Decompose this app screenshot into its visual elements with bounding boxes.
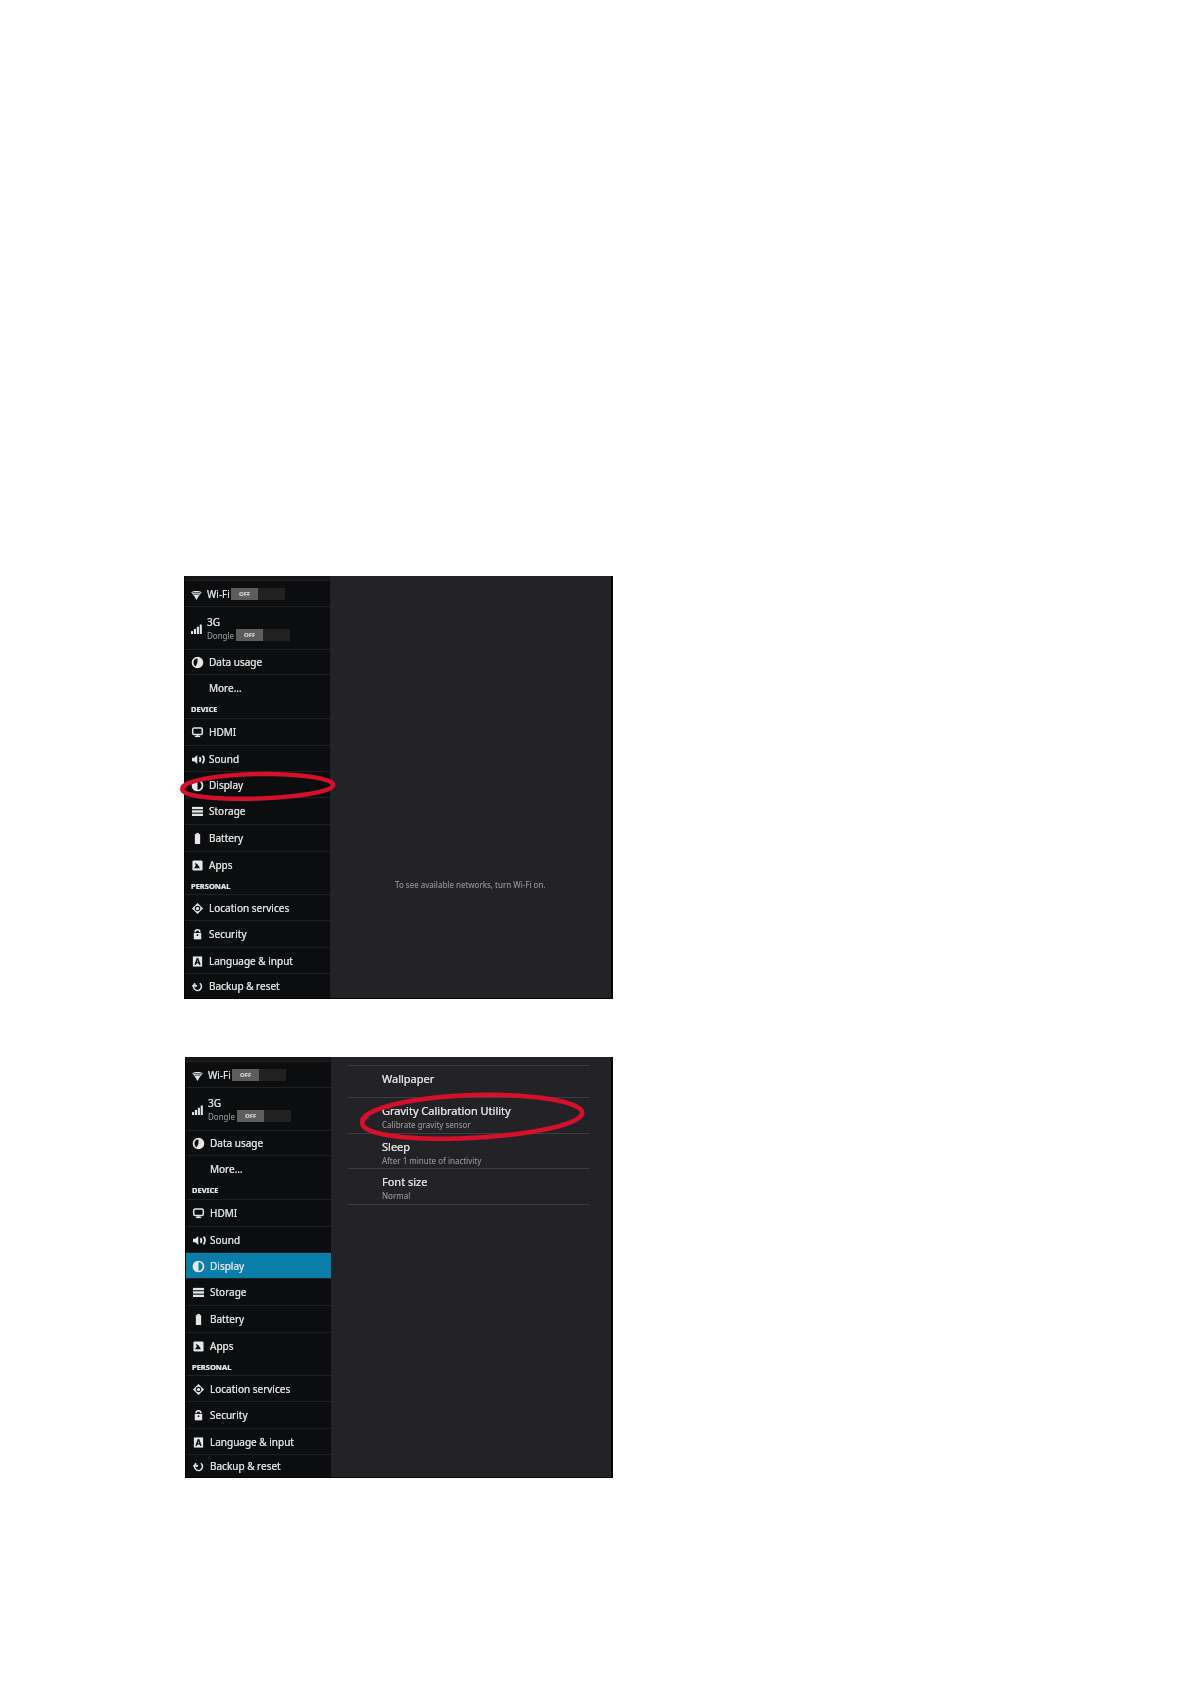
- button[interactable]: Display: [185, 771, 330, 797]
- button[interactable]: Location services: [185, 894, 330, 920]
- staticText: 3G: [208, 1096, 221, 1110]
- button[interactable]: Language & input: [186, 1428, 331, 1454]
- button[interactable]: Wallpaper: [331, 1065, 611, 1097]
- button[interactable]: Display: [186, 1252, 331, 1278]
- button[interactable]: Wi-Fi toggle, off: [232, 1069, 286, 1081]
- button[interactable]: Language & input: [185, 947, 330, 973]
- staticText: Sleep: [382, 1139, 411, 1154]
- staticText: Dongle: [207, 630, 235, 641]
- button[interactable]: 3G toggle, off: [237, 1110, 291, 1122]
- button[interactable]: 3G: [186, 1087, 331, 1130]
- staticText: Sound: [209, 752, 240, 766]
- button[interactable]: Sound: [186, 1226, 331, 1252]
- button[interactable]: Font size: [331, 1168, 611, 1204]
- staticText: Data usage: [209, 655, 263, 669]
- staticText: More...: [210, 1162, 243, 1176]
- staticText: To see available networks, turn Wi-Fi on…: [395, 879, 546, 890]
- staticText: Dongle: [208, 1111, 236, 1122]
- button[interactable]: Battery: [186, 1305, 331, 1332]
- staticText: Battery: [210, 1312, 245, 1326]
- button[interactable]: Gravity Calibration Utility: [331, 1097, 611, 1133]
- button[interactable]: Storage: [185, 797, 330, 824]
- staticText: Storage: [210, 1285, 247, 1299]
- staticText: Wallpaper: [382, 1071, 435, 1086]
- button[interactable]: Apps: [185, 851, 330, 877]
- button[interactable]: Security: [185, 920, 330, 947]
- staticText: HDMI: [210, 1206, 238, 1220]
- staticText: Apps: [210, 1339, 234, 1353]
- button[interactable]: Backup & reset: [185, 973, 330, 998]
- staticText: Language & input: [209, 954, 293, 968]
- staticText: Language & input: [210, 1435, 294, 1449]
- staticText: Battery: [209, 831, 244, 845]
- staticText: Data usage: [210, 1136, 264, 1150]
- staticText: Sound: [210, 1233, 241, 1247]
- staticText: Wi-Fi: [208, 1068, 231, 1082]
- button[interactable]: Security: [186, 1401, 331, 1428]
- staticText: OFF: [245, 1112, 257, 1120]
- staticText: Apps: [209, 858, 233, 872]
- button[interactable]: Battery: [185, 824, 330, 851]
- staticText: PERSONAL: [191, 881, 231, 891]
- staticText: DEVICE: [191, 704, 218, 714]
- staticText: More...: [209, 681, 242, 695]
- staticText: DEVICE: [192, 1185, 219, 1195]
- button[interactable]: 3G: [185, 606, 330, 649]
- button[interactable]: Apps: [186, 1332, 331, 1358]
- staticText: Storage: [209, 804, 246, 818]
- button[interactable]: Wi-Fi toggle, off: [231, 588, 285, 600]
- button[interactable]: 3G toggle, off: [236, 629, 290, 641]
- staticText: OFF: [239, 590, 251, 598]
- staticText: Backup & reset: [209, 979, 280, 993]
- button[interactable]: Wi-Fi: [185, 580, 330, 606]
- button[interactable]: Data usage: [185, 649, 330, 674]
- staticText: PERSONAL: [192, 1362, 232, 1372]
- button[interactable]: Wi-Fi: [186, 1061, 331, 1087]
- button[interactable]: HDMI: [185, 718, 330, 745]
- button[interactable]: Sleep: [331, 1133, 611, 1168]
- staticText: Display: [210, 1259, 245, 1273]
- staticText: Normal: [382, 1190, 411, 1201]
- staticText: Location services: [210, 1382, 291, 1396]
- button[interactable]: Data usage: [186, 1130, 331, 1155]
- staticText: Backup & reset: [210, 1459, 281, 1473]
- staticText: Gravity Calibration Utility: [382, 1103, 511, 1118]
- button[interactable]: More...: [185, 674, 330, 700]
- button[interactable]: Storage: [186, 1278, 331, 1305]
- staticText: After 1 minute of inactivity: [382, 1155, 482, 1166]
- button[interactable]: Backup & reset: [186, 1454, 331, 1477]
- staticText: OFF: [244, 631, 256, 639]
- staticText: Calibrate gravity sensor: [382, 1119, 471, 1130]
- button[interactable]: HDMI: [186, 1199, 331, 1226]
- button[interactable]: More...: [186, 1155, 331, 1181]
- staticText: Display: [209, 778, 244, 792]
- staticText: Security: [210, 1408, 248, 1422]
- staticText: Location services: [209, 901, 290, 915]
- staticText: Security: [209, 927, 247, 941]
- staticText: Wi-Fi: [207, 587, 230, 601]
- button[interactable]: Sound: [185, 745, 330, 771]
- staticText: HDMI: [209, 725, 237, 739]
- staticText: OFF: [240, 1071, 252, 1079]
- staticText: Font size: [382, 1174, 428, 1189]
- staticText: 3G: [207, 615, 220, 629]
- button[interactable]: Location services: [186, 1375, 331, 1401]
